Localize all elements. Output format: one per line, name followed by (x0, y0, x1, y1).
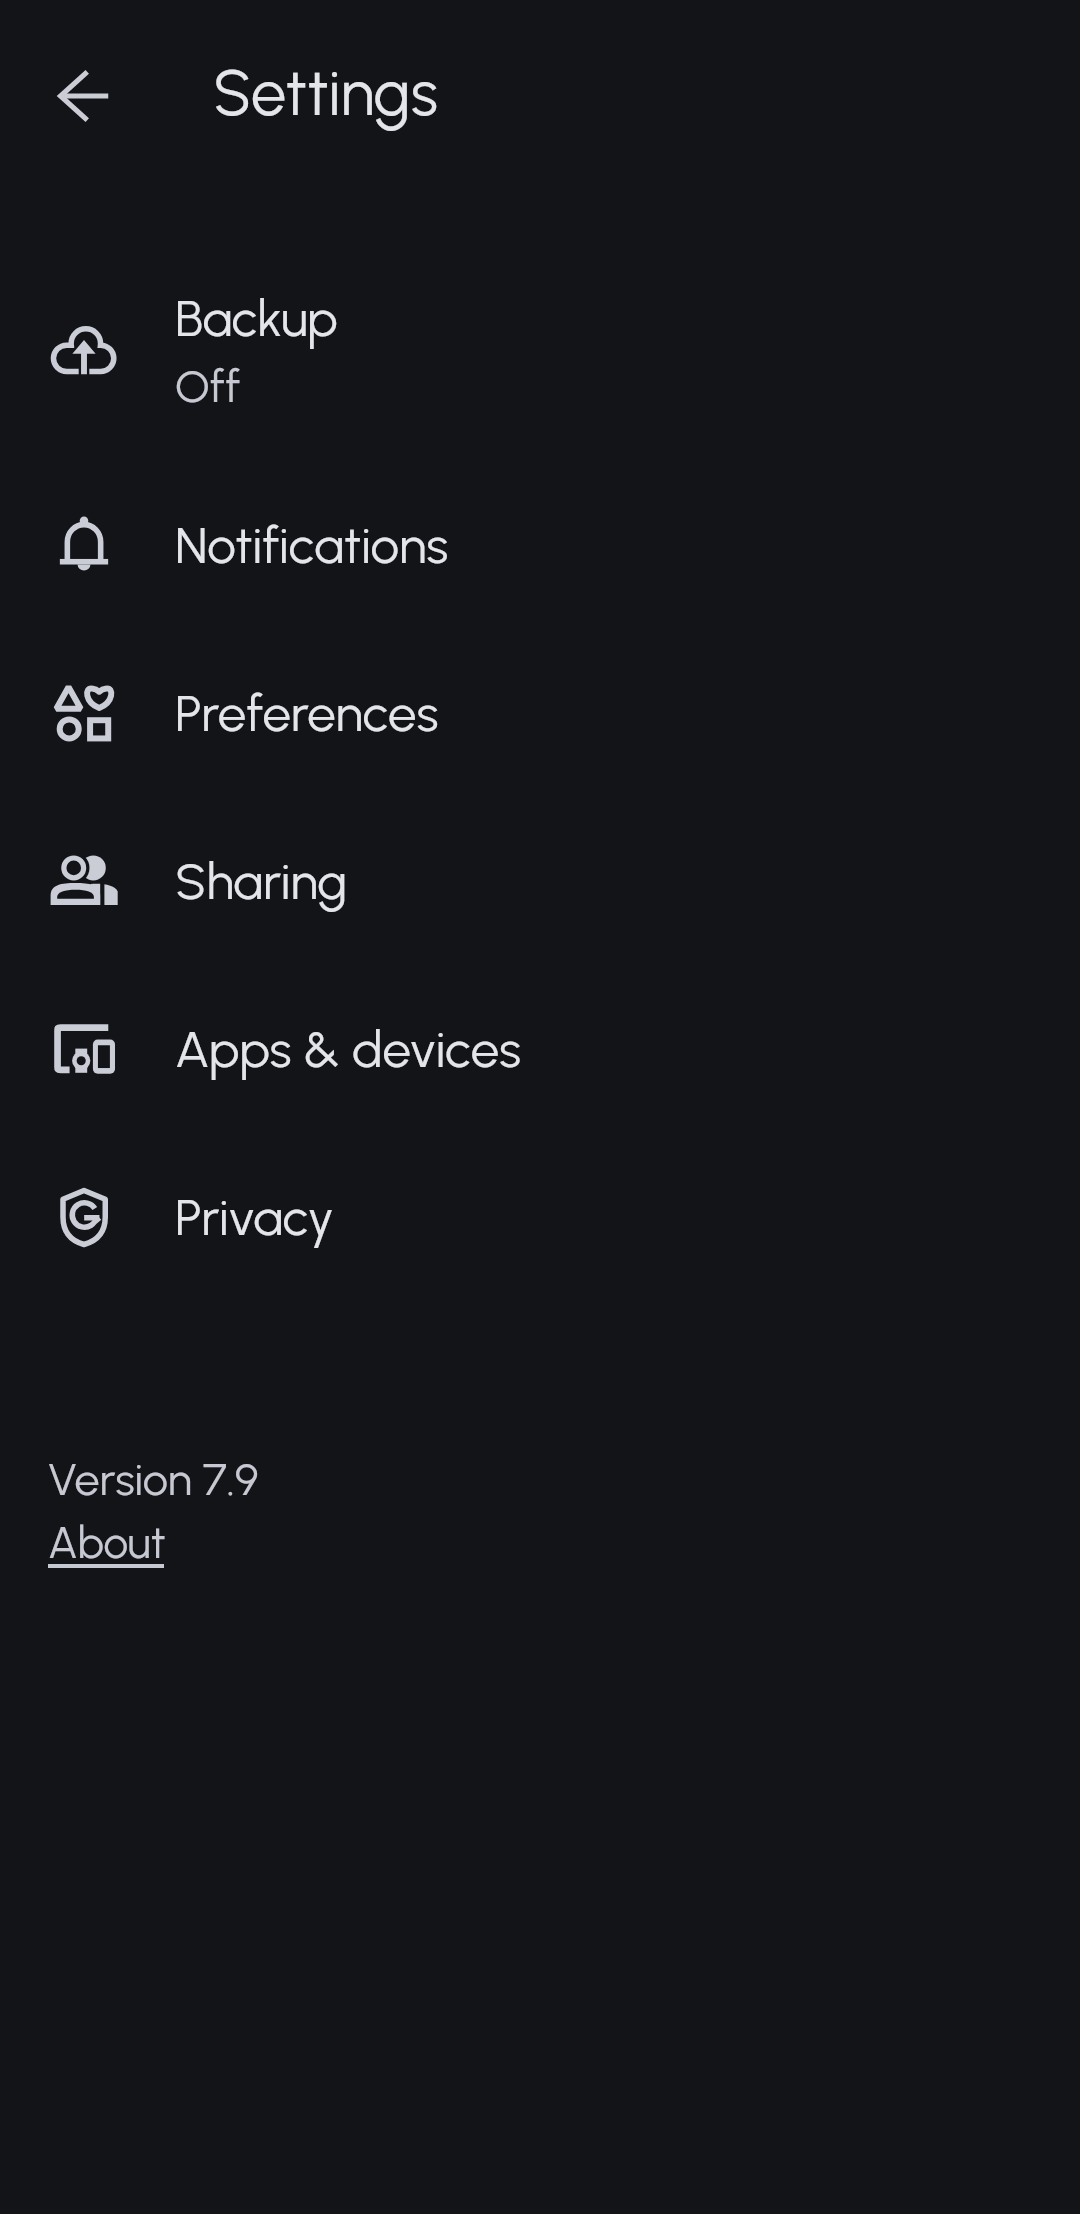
staticText: About (48, 1516, 166, 1569)
button[interactable] (0, 629, 1080, 797)
staticText: Sharing (175, 851, 348, 912)
staticText: Off (175, 359, 241, 413)
button[interactable]: Back (29, 41, 139, 151)
button[interactable]: About (48, 1503, 174, 1585)
button[interactable] (0, 797, 1080, 965)
button[interactable] (0, 266, 1080, 434)
staticText: Privacy (175, 1187, 334, 1248)
staticText: Backup (175, 288, 338, 349)
staticText: Apps & devices (175, 1019, 521, 1080)
staticText: Preferences (175, 683, 439, 744)
button[interactable] (0, 461, 1080, 629)
button[interactable] (0, 1133, 1080, 1301)
staticText: Settings (213, 55, 438, 131)
staticText: Notifications (175, 515, 449, 576)
button[interactable] (0, 965, 1080, 1133)
staticText: Version 7.9 (48, 1452, 259, 1506)
